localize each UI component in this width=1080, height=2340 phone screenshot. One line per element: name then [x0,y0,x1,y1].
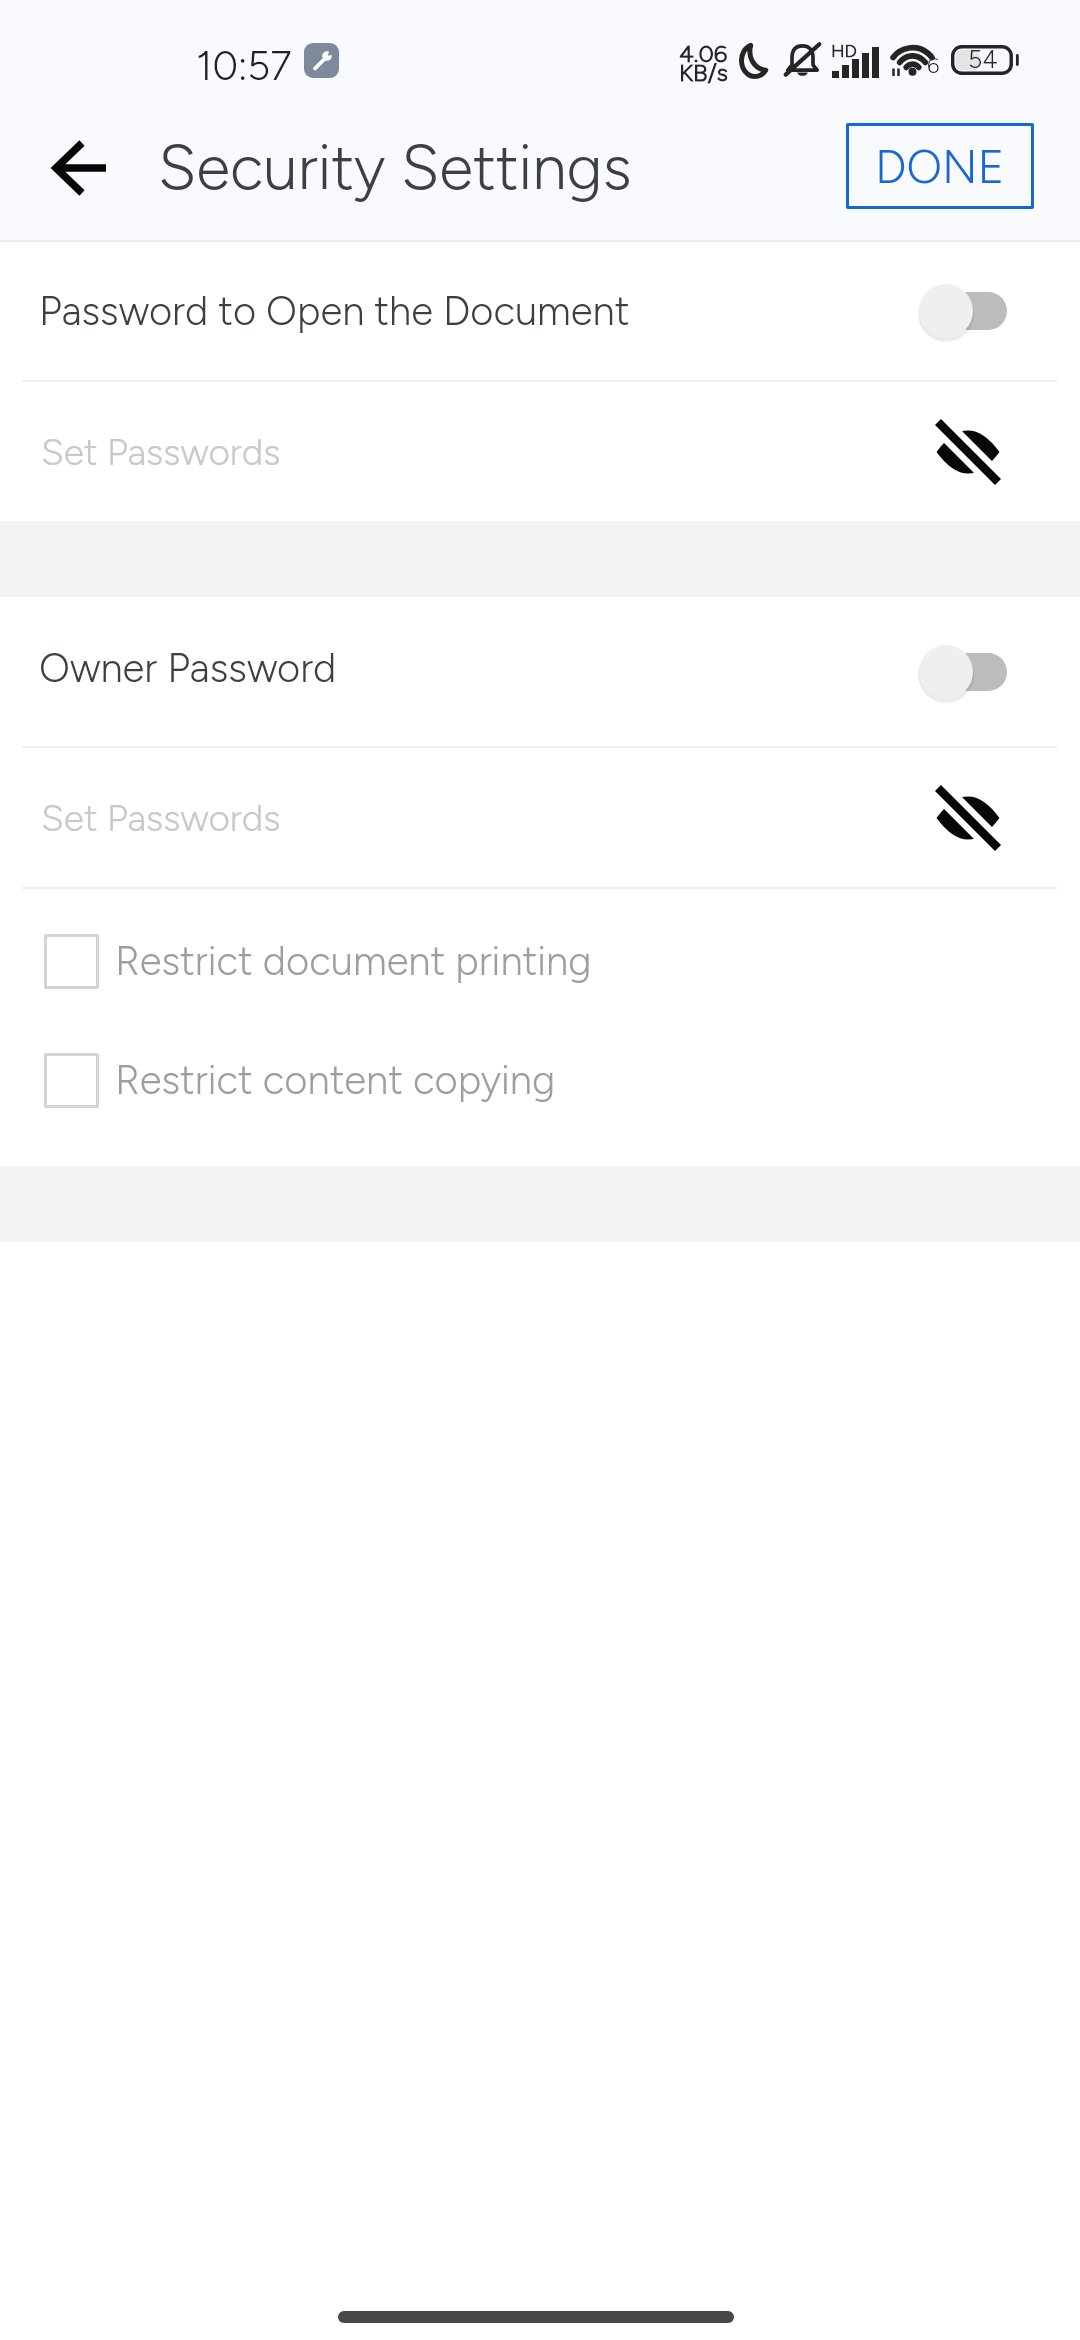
staticText: Restrict document printing [115,937,592,985]
staticText: 54 [968,44,998,74]
button[interactable]: Owner Password [0,597,1080,746]
button[interactable]: Show password [922,406,1014,498]
staticText: Password to Open the Document [39,287,630,335]
button[interactable]: Set Passwords [0,382,1080,521]
staticText: Security Settings [158,130,632,204]
button[interactable]: Restrict content copying [0,1033,1080,1127]
button[interactable]: Back [31,118,131,218]
button[interactable]: DONE [846,123,1034,209]
button[interactable]: Password to Open the Document [0,242,1080,380]
staticText: Restrict content copying [115,1056,556,1104]
staticText: Set Passwords [41,796,281,840]
staticText: 10:57 [196,42,292,90]
button[interactable]: Show password [922,772,1014,864]
staticText: 6 [927,52,940,78]
staticText: HD [831,40,857,62]
staticText: Owner Password [39,644,337,692]
button[interactable]: Set Passwords [0,748,1080,887]
button[interactable]: Restrict document printing [0,889,1080,1033]
staticText: DONE [875,139,1005,194]
staticText: 4.06 KB/s [679,39,728,87]
staticText: Set Passwords [41,430,281,474]
